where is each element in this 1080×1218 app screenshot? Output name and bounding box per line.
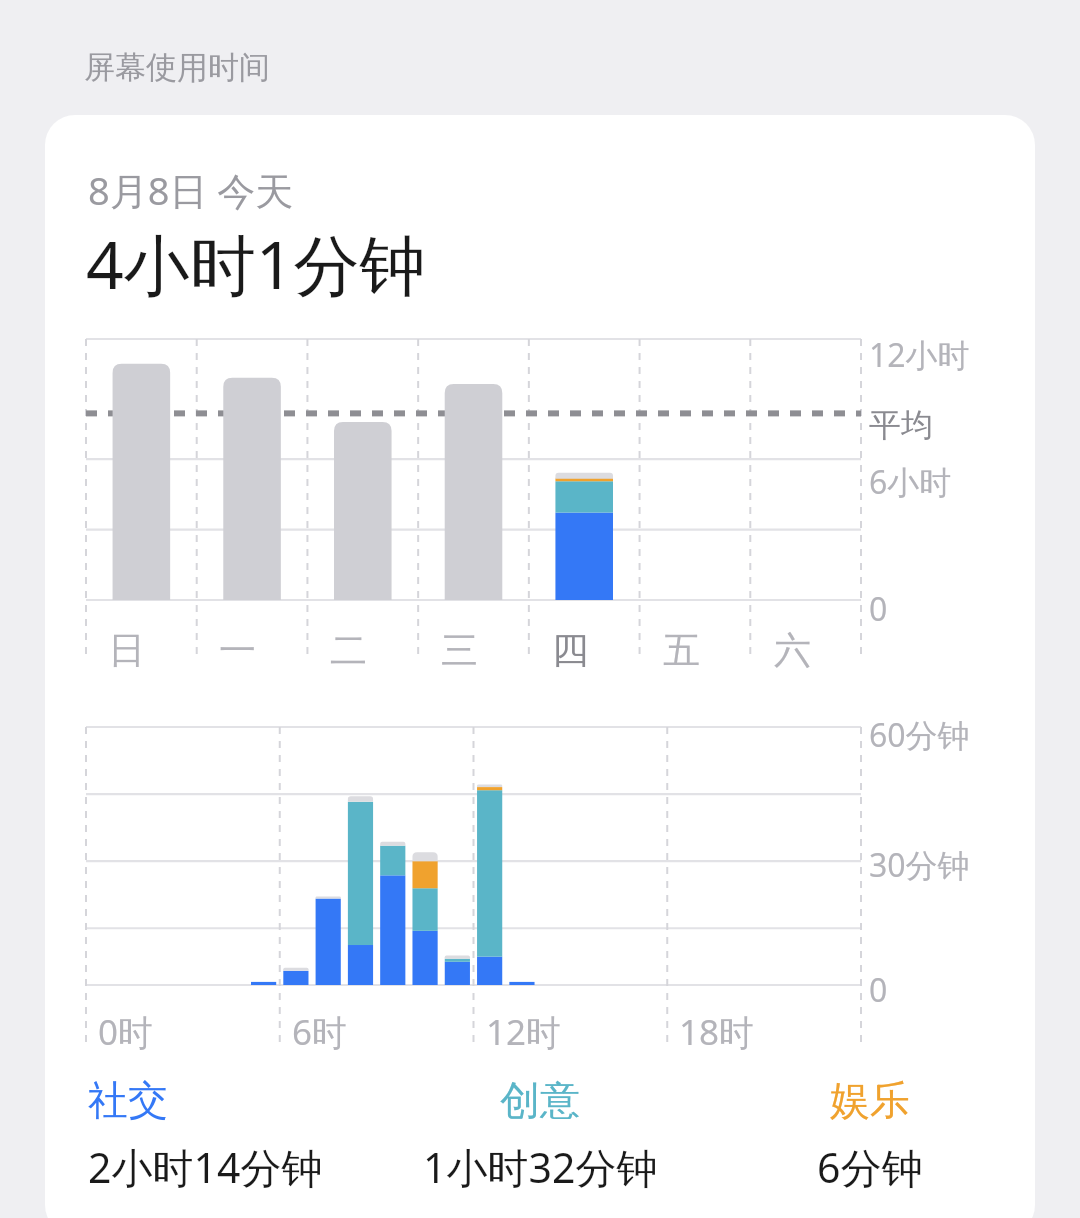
button[interactable]: 娱乐 (705, 1075, 1035, 1195)
staticText: 0 (869, 968, 888, 1012)
button[interactable] (86, 725, 861, 1007)
staticText: 五 (663, 627, 700, 674)
staticText: 6时 (292, 1008, 348, 1056)
button[interactable] (86, 337, 861, 612)
staticText: 12小时 (869, 333, 970, 377)
staticText: 二 (330, 627, 367, 674)
staticText: 屏幕使用时间 (84, 48, 270, 87)
staticText: 社交 (88, 1075, 168, 1125)
staticText: 18时 (679, 1008, 755, 1056)
staticText: 30分钟 (869, 843, 970, 887)
staticText: 三 (441, 627, 478, 674)
staticText: 0 (869, 587, 888, 631)
staticText: 六 (774, 627, 811, 674)
button[interactable]: 8月8日 今天 (45, 115, 1035, 1218)
staticText: 1小时32分钟 (423, 1139, 658, 1195)
staticText: 日 (108, 627, 145, 674)
staticText: 2小时14分钟 (88, 1139, 323, 1195)
staticText: 60分钟 (869, 713, 970, 757)
staticText: 娱乐 (830, 1075, 910, 1125)
staticText: 8月8日 今天 (88, 164, 294, 216)
staticText: 创意 (500, 1075, 580, 1125)
staticText: 0时 (98, 1008, 154, 1056)
staticText: 平均 (869, 405, 933, 445)
button[interactable]: 创意 (375, 1075, 705, 1195)
staticText: 四 (552, 627, 589, 674)
staticText: 一 (219, 627, 256, 674)
staticText: 6分钟 (817, 1139, 923, 1195)
button[interactable]: 社交 (88, 1075, 375, 1195)
staticText: 12时 (486, 1008, 562, 1056)
staticText: 6小时 (869, 460, 952, 504)
staticText: 4小时1分钟 (86, 218, 426, 308)
